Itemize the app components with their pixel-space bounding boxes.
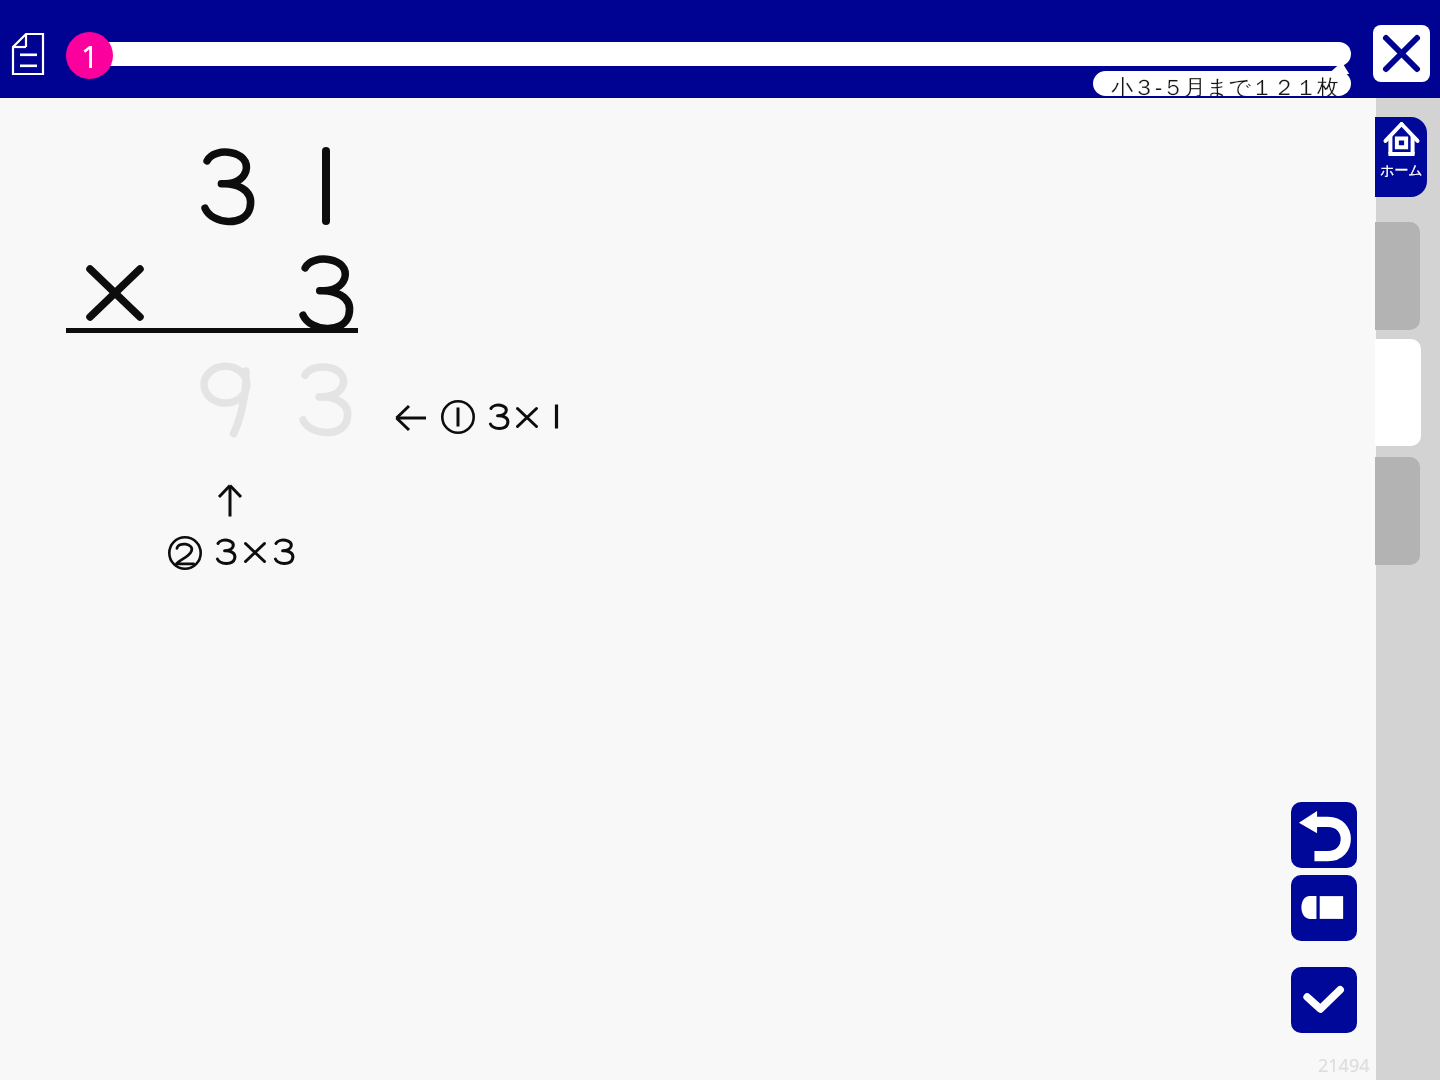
button[interactable]: Done bbox=[1291, 967, 1357, 1033]
button[interactable]: Page tab 2, selected bbox=[1375, 339, 1421, 446]
button[interactable]: 小３-５月まで１２１枚 bbox=[1093, 71, 1351, 96]
staticText: 1 bbox=[81, 35, 99, 77]
button[interactable]: Eraser bbox=[1291, 875, 1357, 941]
button[interactable]: Question 1 bbox=[66, 32, 113, 79]
staticText: 21494 bbox=[1318, 1053, 1370, 1078]
button[interactable]: Undo bbox=[1291, 802, 1357, 868]
button[interactable]: Home bbox=[1375, 117, 1427, 197]
button[interactable]: Close bbox=[1373, 25, 1430, 82]
staticText: ホーム bbox=[1380, 162, 1423, 180]
staticText: 小３-５月まで１２１枚 bbox=[1111, 71, 1340, 96]
button[interactable]: Worksheet bbox=[8, 28, 48, 80]
